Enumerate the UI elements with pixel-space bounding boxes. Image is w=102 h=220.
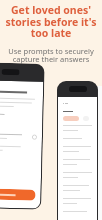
staticText: Use prompts to securely capture their an… <box>0 46 102 64</box>
staticText: Get loved ones' stories before it's too … <box>0 3 102 40</box>
button[interactable] <box>0 188 36 201</box>
